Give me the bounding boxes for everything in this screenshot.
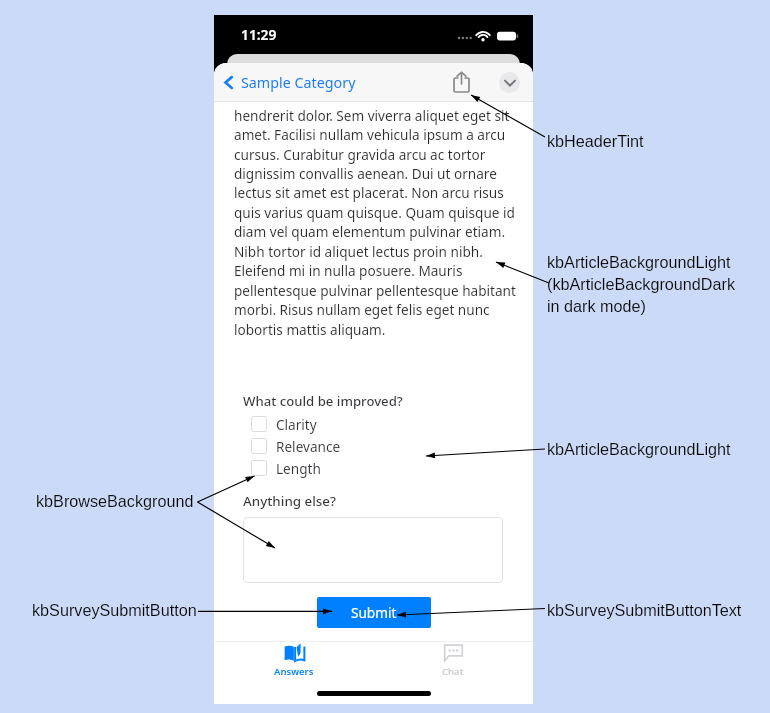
button[interactable]: Relevance: [243, 435, 503, 457]
staticText: lectus sit amet est placerat. Non arcu r…: [234, 183, 504, 202]
button[interactable]: Chat: [373, 642, 533, 684]
button[interactable]: Share: [446, 67, 476, 97]
button[interactable]: [243, 517, 503, 583]
button[interactable]: Clarity: [243, 413, 503, 435]
staticText: amet. Facilisi nullam vehicula ipsum a a…: [234, 125, 506, 144]
staticText: Sample Category: [241, 73, 356, 92]
staticText: quis varius quam quisque. Quam quisque i…: [234, 203, 515, 222]
button[interactable]: Submit: [317, 597, 431, 628]
staticText: Length: [276, 459, 321, 478]
staticText: Eleifend mi in nulla posuere. Mauris: [234, 261, 463, 280]
button[interactable]: Sample Category: [219, 69, 358, 96]
staticText: morbi. Risus nullam eget felis eget nunc: [234, 300, 490, 319]
staticText: Nibh tortor id aliquet lectus proin nibh…: [234, 242, 483, 261]
staticText: Submit: [351, 603, 397, 622]
staticText: 11:29: [241, 25, 277, 44]
button[interactable]: Answers: [214, 642, 373, 684]
staticText: kbSurveySubmitButton: [32, 601, 197, 619]
staticText: cursus. Curabitur gravida arcu ac tortor: [234, 145, 486, 164]
staticText: kbArticleBackgroundLight (kbArticleBackg…: [547, 253, 736, 315]
staticText: hendrerit dolor. Sem viverra aliquet ege…: [234, 106, 510, 125]
staticText: Answers: [274, 665, 314, 678]
button[interactable]: Collapse: [499, 72, 520, 93]
staticText: kbBrowseBackground: [36, 492, 194, 510]
staticText: kbArticleBackgroundLight: [547, 440, 731, 458]
staticText: What could be improved?: [243, 392, 403, 410]
button[interactable]: Length: [243, 457, 503, 479]
staticText: Anything else?: [243, 492, 337, 510]
staticText: lobortis mattis aliquam.: [234, 320, 386, 339]
staticText: diam vel quam elementum pulvinar etiam.: [234, 222, 506, 241]
staticText: pellentesque pulvinar pellentesque habit…: [234, 281, 516, 300]
staticText: dignissim convallis aenean. Dui ut ornar…: [234, 164, 497, 183]
staticText: Relevance: [276, 437, 341, 456]
staticText: kbHeaderTint: [547, 132, 644, 150]
staticText: Chat: [442, 665, 464, 678]
staticText: Clarity: [276, 415, 317, 434]
staticText: kbSurveySubmitButtonText: [547, 601, 742, 619]
